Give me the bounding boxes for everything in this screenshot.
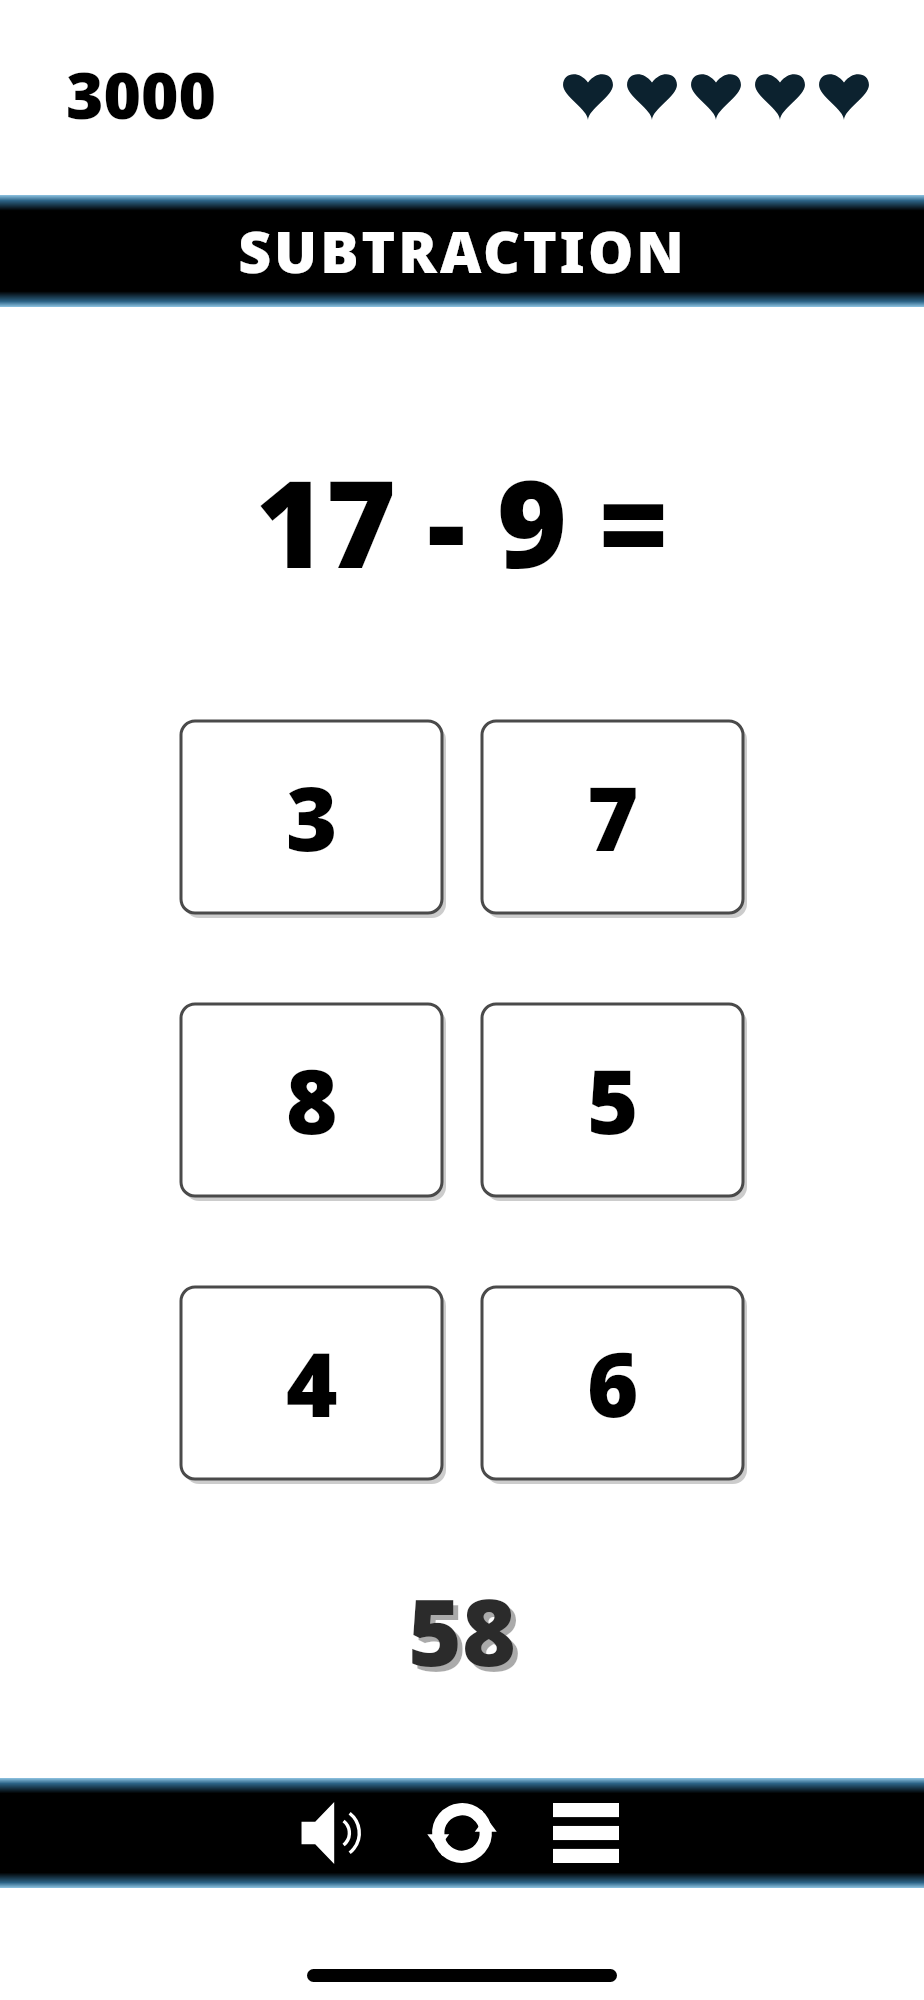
staticText: 6 [587,1323,639,1443]
staticText: 8 [286,1040,338,1160]
staticText: 5 [587,1040,639,1160]
button[interactable]: 8 [181,1004,442,1196]
button[interactable]: 3 [181,721,442,913]
button[interactable]: 4 [181,1287,442,1479]
button[interactable]: Sound [290,1793,386,1873]
staticText: 4 [286,1323,338,1443]
staticText: 17 - 9 = [255,440,669,600]
staticText: 3000 [66,51,217,138]
button[interactable]: 5 [482,1004,743,1196]
staticText: 3 [286,757,338,877]
button[interactable]: 6 [482,1287,743,1479]
button[interactable]: 7 [482,721,743,913]
staticText: 58 [413,1573,521,1698]
staticText: 58 [408,1568,516,1693]
staticText: SUBTRACTION [238,212,687,290]
button[interactable]: Refresh [414,1793,510,1873]
button[interactable]: Menu [538,1793,634,1873]
staticText: 7 [587,757,639,877]
